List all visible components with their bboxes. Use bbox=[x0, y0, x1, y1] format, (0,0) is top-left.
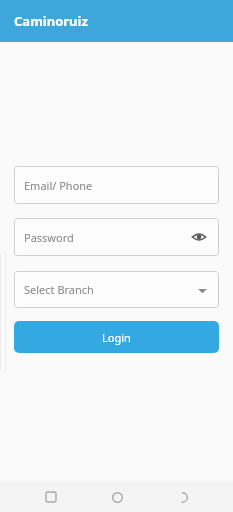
staticText: Caminoruiz bbox=[14, 12, 88, 30]
other: Open branch list bbox=[193, 281, 211, 299]
button[interactable]: Recent apps bbox=[36, 482, 66, 512]
button[interactable]: Select Branch bbox=[14, 271, 219, 308]
button[interactable]: Login bbox=[14, 321, 219, 353]
staticText: Select Branch bbox=[24, 282, 193, 297]
button[interactable]: Show password bbox=[189, 227, 209, 247]
staticText: Email/ Phone bbox=[24, 178, 209, 193]
button[interactable]: Back bbox=[167, 482, 197, 512]
button[interactable]: Password bbox=[14, 218, 219, 256]
staticText: Password bbox=[24, 230, 189, 245]
button[interactable]: Email/ Phone bbox=[14, 166, 219, 204]
staticText: Login bbox=[102, 330, 131, 345]
button[interactable]: Home bbox=[102, 482, 132, 512]
